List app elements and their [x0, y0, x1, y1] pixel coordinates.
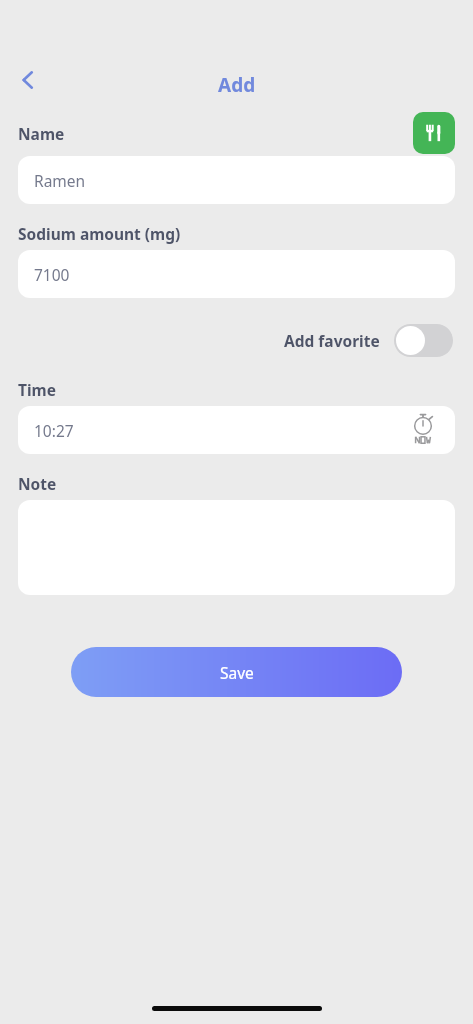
staticText: Time — [18, 379, 56, 400]
staticText: 10:27 — [34, 420, 74, 441]
staticText: Ramen — [34, 170, 86, 191]
staticText: Add favorite — [284, 330, 380, 351]
button[interactable]: Add favorite toggle — [394, 324, 453, 357]
staticText: 7100 — [34, 264, 70, 285]
button[interactable]: 7100 — [18, 250, 455, 298]
staticText: Sodium amount (mg) — [18, 223, 181, 244]
button[interactable]: Set time to now — [403, 410, 443, 450]
button[interactable]: Save — [71, 647, 402, 697]
button[interactable]: 10:27 — [18, 406, 455, 454]
button[interactable]: Back — [6, 58, 50, 102]
button[interactable]: Food category — [413, 112, 455, 154]
staticText: Note — [18, 473, 57, 494]
staticText: Save — [220, 662, 254, 683]
staticText: Add — [218, 72, 256, 98]
button[interactable]: Add favorite — [282, 322, 455, 359]
button[interactable]: Ramen — [18, 156, 455, 204]
staticText: Name — [18, 123, 65, 144]
